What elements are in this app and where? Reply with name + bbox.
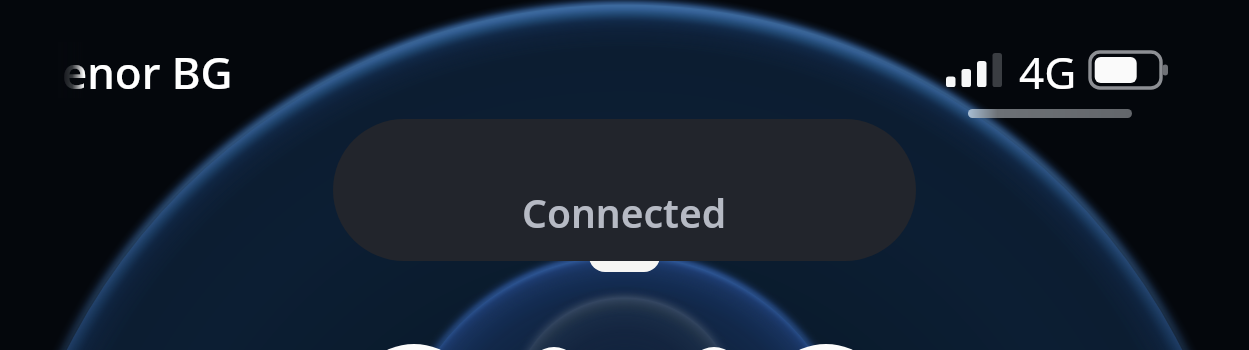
other: Cellular signal bbox=[944, 50, 1008, 92]
button[interactable]: App icon bbox=[351, 344, 477, 350]
button[interactable]: App icon bbox=[528, 347, 580, 350]
staticText: 4G bbox=[1019, 42, 1077, 102]
button[interactable]: Connected bbox=[333, 119, 916, 261]
other: Battery bbox=[1088, 50, 1174, 94]
button[interactable]: App icon bbox=[763, 344, 889, 350]
button[interactable]: App icon bbox=[688, 347, 740, 350]
staticText: enor BG bbox=[62, 42, 233, 98]
staticText: Connected bbox=[522, 186, 727, 239]
